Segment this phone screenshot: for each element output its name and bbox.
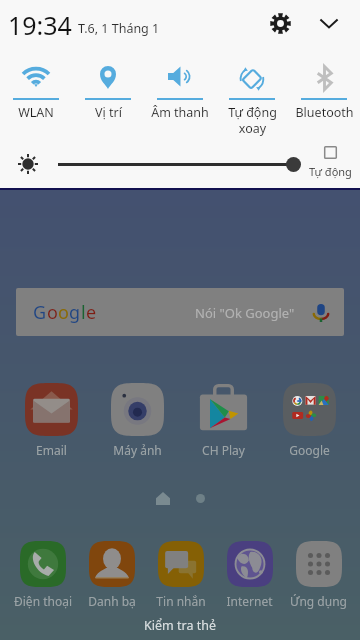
button[interactable]: Internet [215,541,284,609]
staticText: g [69,300,81,325]
staticText: Ứng dụng [290,593,347,609]
staticText: Tự động [309,164,352,179]
button[interactable]: CH Play [180,383,266,458]
staticText: o [58,300,69,325]
button[interactable]: Điện thoại [8,541,77,609]
button[interactable]: Tự động xoay [216,46,288,174]
button[interactable]: Vị trí [72,46,144,174]
button[interactable]: Bluetooth [288,46,360,174]
staticText: Tin nhắn [156,593,206,609]
button[interactable]: Ứng dụng [284,541,353,609]
staticText: Nói "Ok Google" [195,304,295,322]
staticText: Email [36,442,67,458]
staticText: Điện thoại [14,593,72,609]
staticText: Danh bạ [88,593,136,609]
staticText: CH Play [202,442,245,458]
staticText: G [33,300,47,325]
button[interactable]: Brightness slider [50,154,300,174]
staticText: l [81,300,86,325]
staticText: Kiểm tra thẻ [144,617,216,634]
staticText: Vị trí [95,104,122,121]
button[interactable]: Máy ảnh [94,383,180,458]
staticText: 19:34 [8,8,72,42]
button[interactable]: G [16,288,344,336]
staticText: o [47,300,58,325]
staticText: Google [289,442,330,458]
button[interactable]: Google [266,383,352,458]
staticText: Internet [226,593,273,609]
button[interactable]: Email [8,383,94,458]
staticText: T.6, 1 Tháng 1 [78,20,160,37]
staticText: Máy ảnh [113,442,162,458]
staticText: WLAN [18,104,54,121]
button[interactable]: Danh bạ [77,541,146,609]
button[interactable]: Settings [264,7,296,39]
staticText: Bluetooth [295,104,354,121]
button[interactable]: WLAN [0,46,72,174]
button[interactable]: Tin nhắn [146,541,215,609]
staticText: Tự động xoay [228,104,277,136]
button[interactable]: Tự động [304,146,356,179]
staticText: e [86,300,97,325]
button[interactable]: Collapse panel [313,7,345,39]
staticText: Âm thanh [151,104,209,121]
button[interactable]: Âm thanh [144,46,216,174]
